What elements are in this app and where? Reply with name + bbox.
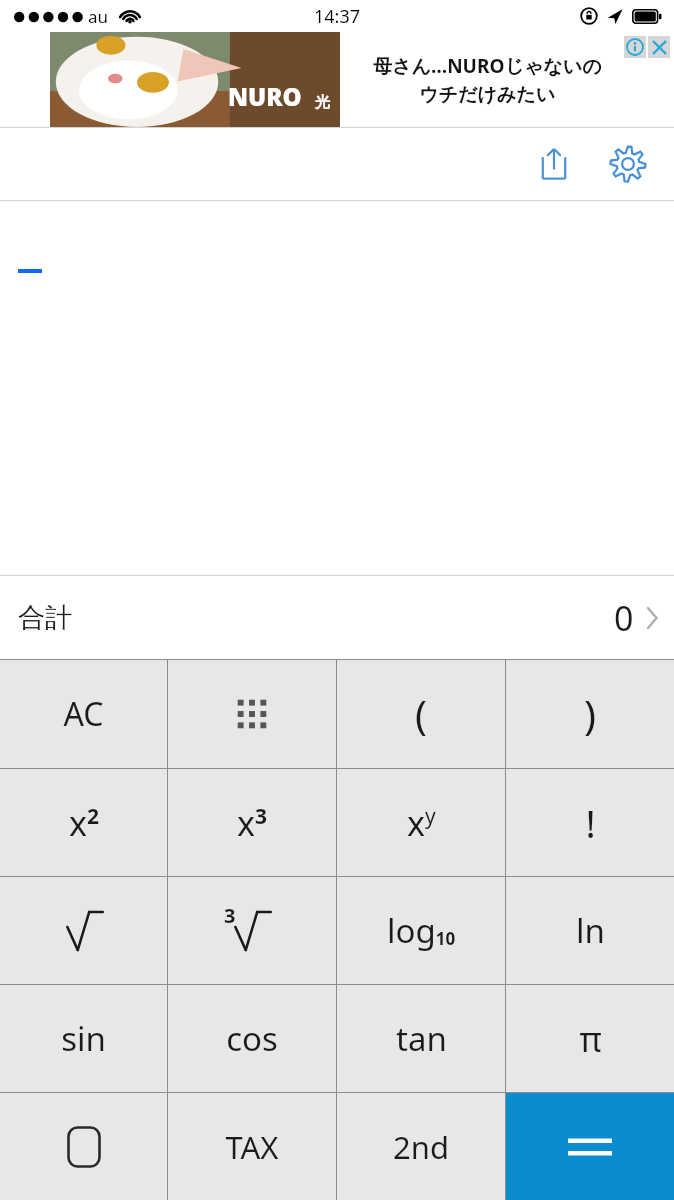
button[interactable]: 合計 bbox=[0, 576, 674, 659]
staticText: NURO bbox=[228, 80, 302, 113]
staticText: 14:37 bbox=[314, 4, 361, 29]
button[interactable]: ( bbox=[337, 660, 505, 768]
button[interactable]: NURO bbox=[0, 32, 674, 127]
button[interactable]: Equals bbox=[506, 1093, 674, 1200]
button[interactable]: Memory bbox=[0, 1093, 167, 1200]
button[interactable]: xy bbox=[337, 769, 505, 876]
button[interactable]: cos bbox=[168, 985, 336, 1092]
staticText: 0 bbox=[614, 595, 634, 641]
button[interactable]: Settings bbox=[602, 138, 654, 190]
button[interactable]: ) bbox=[506, 660, 674, 768]
button[interactable]: Close ad bbox=[648, 36, 670, 58]
button[interactable] bbox=[0, 201, 674, 575]
staticText: x2 bbox=[69, 800, 99, 846]
staticText: sin bbox=[61, 1016, 106, 1061]
staticText: tan bbox=[396, 1016, 447, 1061]
button[interactable]: tan bbox=[337, 985, 505, 1092]
button[interactable]: x2 bbox=[0, 769, 167, 876]
button[interactable]: sin bbox=[0, 985, 167, 1092]
staticText: au bbox=[88, 5, 109, 28]
button[interactable]: log10 bbox=[337, 877, 505, 984]
staticText: TAX bbox=[225, 1126, 279, 1168]
staticText: ウチだけみたい bbox=[419, 83, 556, 107]
staticText: 合計 bbox=[18, 601, 72, 635]
button[interactable]: x3 bbox=[168, 769, 336, 876]
staticText: 3 bbox=[224, 902, 236, 929]
button[interactable]: Cube root bbox=[168, 877, 336, 984]
staticText: 光 bbox=[315, 93, 330, 112]
button[interactable]: π bbox=[506, 985, 674, 1092]
staticText: ! bbox=[585, 797, 596, 849]
staticText: 母さん…NUROじゃないの bbox=[373, 53, 602, 79]
button[interactable]: Ad info bbox=[624, 36, 646, 58]
staticText: ln bbox=[576, 908, 605, 953]
button[interactable]: Share bbox=[528, 138, 580, 190]
staticText: xy bbox=[407, 800, 436, 846]
staticText: log10 bbox=[387, 908, 456, 953]
button[interactable]: 2nd bbox=[337, 1093, 505, 1200]
button[interactable]: TAX bbox=[168, 1093, 336, 1200]
button[interactable]: AC bbox=[0, 660, 167, 768]
staticText: AC bbox=[63, 692, 104, 736]
button[interactable]: Keypad bbox=[168, 660, 336, 768]
button[interactable]: Square root bbox=[0, 877, 167, 984]
staticText: ( bbox=[415, 687, 427, 741]
staticText: cos bbox=[226, 1016, 278, 1061]
staticText: ) bbox=[584, 687, 596, 741]
button[interactable]: ln bbox=[506, 877, 674, 984]
staticText: π bbox=[579, 1016, 602, 1062]
button[interactable]: ! bbox=[506, 769, 674, 876]
staticText: 2nd bbox=[393, 1126, 449, 1168]
staticText: x3 bbox=[237, 800, 267, 846]
